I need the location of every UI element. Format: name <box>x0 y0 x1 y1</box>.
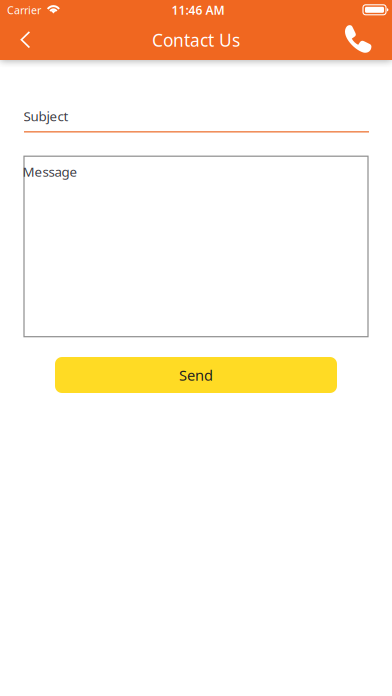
staticText: Message <box>22 163 77 180</box>
button[interactable]: Back <box>5 20 45 60</box>
button[interactable]: Call <box>335 17 379 61</box>
staticText: Contact Us <box>152 28 240 51</box>
button[interactable]: Message <box>24 156 368 337</box>
button[interactable]: Send <box>55 357 337 393</box>
staticText: 11:46 AM <box>171 2 224 18</box>
button[interactable]: Subject <box>24 108 369 144</box>
staticText: Send <box>179 365 213 385</box>
staticText: Subject <box>23 107 68 125</box>
staticText: Carrier <box>7 3 41 17</box>
